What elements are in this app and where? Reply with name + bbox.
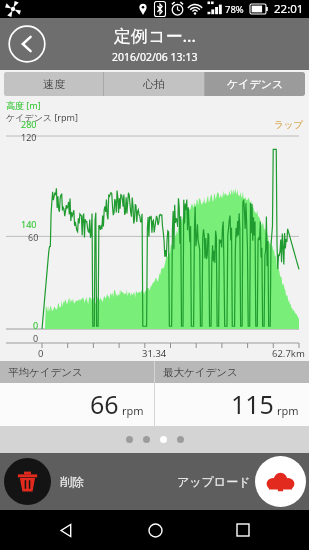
button[interactable]: 115 — [155, 383, 309, 426]
staticText: 速度 — [43, 77, 65, 91]
staticText: 2016/02/06 13:13 — [112, 50, 198, 64]
staticText: 0 — [33, 319, 39, 331]
button[interactable]: Page 2 — [143, 436, 150, 443]
staticText: 62.7km — [272, 347, 305, 360]
staticText: 78% — [225, 3, 244, 16]
staticText: 定例コー… — [114, 24, 196, 47]
button[interactable]: 削除 — [0, 453, 84, 510]
button[interactable]: 速度 — [4, 72, 103, 96]
staticText: 120 — [21, 131, 37, 143]
staticText: 115 — [231, 387, 274, 421]
button[interactable]: 66 — [0, 383, 154, 426]
staticText: rpm — [277, 403, 299, 418]
button[interactable]: Home — [133, 510, 177, 550]
staticText: ケイデンス — [227, 77, 284, 91]
staticText: ラップ — [274, 119, 304, 131]
button[interactable]: Page 4 — [177, 436, 184, 443]
button[interactable]: Page 3 — [160, 436, 167, 443]
staticText: 心拍 — [143, 77, 165, 91]
staticText: 0 — [38, 347, 44, 360]
staticText: 最大ケイデンス — [163, 366, 238, 379]
button[interactable]: ケイデンス — [205, 72, 305, 96]
staticText: アップロード — [177, 474, 251, 489]
button[interactable]: Recents — [221, 510, 265, 550]
button[interactable]: Page 1 — [126, 436, 133, 443]
staticText: 60 — [28, 231, 39, 243]
staticText: 280 — [21, 118, 37, 130]
button[interactable]: Back — [6, 23, 48, 65]
button[interactable]: 心拍 — [104, 72, 204, 96]
staticText: 140 — [21, 218, 37, 230]
staticText: 削除 — [60, 474, 84, 489]
button[interactable]: Back — [44, 510, 88, 550]
staticText: 0 — [33, 332, 39, 344]
staticText: 22:01 — [274, 1, 304, 17]
staticText: rpm — [122, 403, 144, 418]
staticText: 66 — [90, 387, 119, 421]
staticText: 平均ケイデンス — [8, 366, 83, 379]
button[interactable]: アップロード — [177, 453, 309, 510]
staticText: ケイデンス [rpm] — [6, 111, 78, 123]
staticText: 31.34 — [142, 347, 167, 360]
staticText: 高度 [m] — [6, 99, 41, 111]
